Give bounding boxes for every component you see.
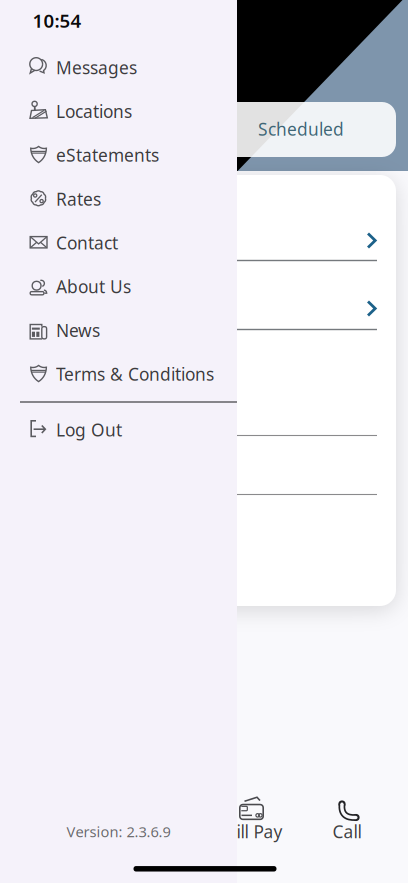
staticText: Version: 2.3.6.9	[66, 822, 170, 841]
button[interactable]: eStatements	[0, 134, 237, 177]
staticText: 10:54	[32, 8, 81, 33]
button[interactable]: Call	[303, 787, 391, 839]
button[interactable]: Contact	[0, 221, 237, 264]
staticText: Rates	[56, 187, 101, 210]
staticText: Contact	[56, 231, 118, 254]
staticText: Log Out	[56, 418, 122, 441]
button[interactable]: News	[0, 309, 237, 352]
button[interactable]: Rates	[0, 177, 237, 220]
staticText: Locations	[56, 100, 132, 123]
button[interactable]: Scheduled	[12, 102, 396, 157]
staticText: News	[56, 319, 100, 342]
button[interactable]: Log Out	[0, 408, 237, 451]
staticText: Bill Pay	[225, 820, 282, 843]
staticText: Terms & Conditions	[56, 363, 214, 386]
staticText: Messages	[56, 56, 137, 79]
staticText: About Us	[56, 275, 131, 298]
button[interactable]: Terms & Conditions	[0, 353, 237, 396]
staticText: eStatements	[56, 144, 159, 167]
button[interactable]: About Us	[0, 265, 237, 308]
button[interactable]: Locations	[0, 90, 237, 133]
button[interactable]: Scheduled payment 2	[12, 260, 396, 329]
staticText: Scheduled	[258, 117, 344, 140]
button[interactable]: Bill Pay	[210, 787, 298, 839]
button[interactable]: Scheduled payment 1	[12, 175, 396, 260]
button[interactable]: Messages	[0, 46, 237, 89]
staticText: Call	[332, 820, 361, 843]
